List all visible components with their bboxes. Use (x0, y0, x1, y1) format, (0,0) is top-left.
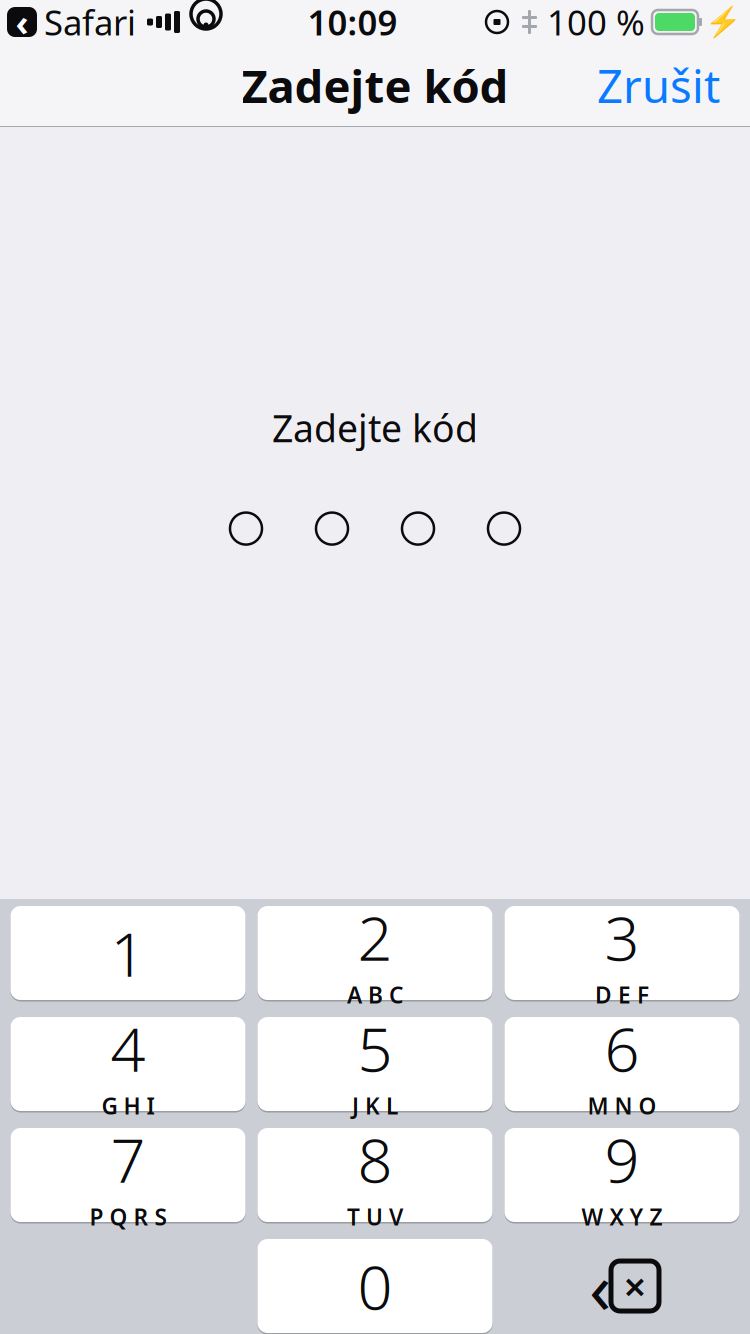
staticText: Zadejte kód (272, 403, 478, 453)
staticText: 1 (110, 912, 145, 994)
staticText: 6 (604, 1007, 639, 1089)
button[interactable]: Zrušit (579, 43, 738, 128)
button[interactable]: 5 (257, 1015, 492, 1112)
staticText: ⚡ (705, 5, 742, 39)
staticText: 7 (110, 1118, 145, 1200)
button[interactable]: 1 (10, 904, 245, 1001)
staticText: J K L (352, 1091, 398, 1121)
staticText: 3 (604, 896, 639, 978)
button[interactable]: 4 (10, 1015, 245, 1112)
staticText: T U V (347, 1202, 403, 1232)
staticText: 4 (110, 1007, 145, 1089)
button[interactable]: 2 (257, 904, 492, 1001)
staticText: P Q R S (89, 1202, 166, 1232)
staticText: Zrušit (597, 55, 720, 116)
button[interactable]: 6 (504, 1015, 739, 1112)
staticText: ‹ (589, 1238, 611, 1334)
staticText: D E F (595, 980, 649, 1010)
staticText: G H I (101, 1091, 154, 1121)
staticText: ‹ (15, 0, 28, 46)
staticText: 9 (604, 1118, 639, 1200)
staticText: × (623, 1259, 646, 1312)
button[interactable]: Delete (504, 1239, 739, 1333)
staticText: W X Y Z (581, 1202, 662, 1232)
button[interactable]: 0 (257, 1237, 492, 1334)
staticText: A B C (347, 980, 403, 1010)
staticText: M N O (587, 1091, 656, 1121)
button[interactable]: 7 (10, 1126, 245, 1223)
staticText: Safari (44, 0, 136, 45)
button[interactable]: 9 (504, 1126, 739, 1223)
button[interactable]: 8 (257, 1126, 492, 1223)
staticText: 0 (357, 1245, 392, 1327)
staticText: 8 (357, 1118, 392, 1200)
staticText: Zadejte kód (241, 55, 508, 116)
button[interactable]: 3 (504, 904, 739, 1001)
button[interactable]: Back to Safari (0, 0, 136, 45)
staticText: 2 (357, 896, 392, 978)
staticText: 10:09 (307, 0, 397, 45)
staticText: 5 (357, 1007, 392, 1089)
staticText: 100 % (547, 0, 645, 45)
